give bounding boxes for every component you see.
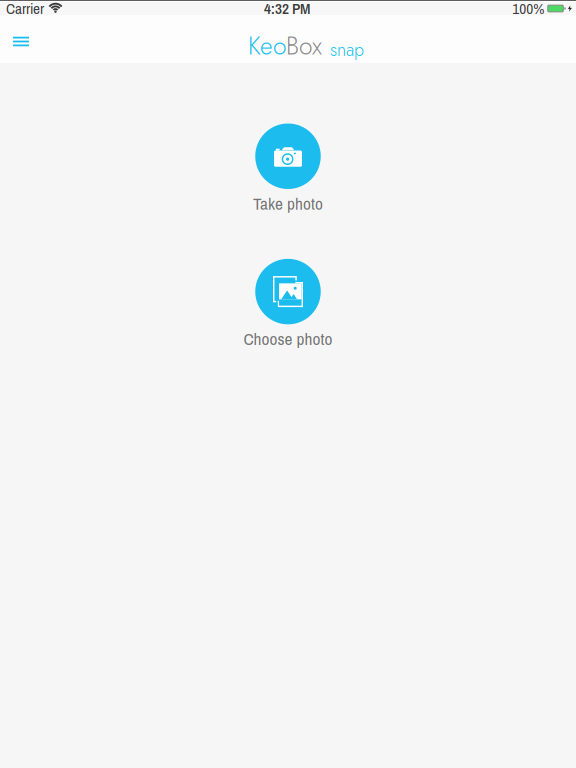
staticText: 4:32 PM: [264, 0, 310, 19]
staticText: snap: [330, 37, 364, 63]
staticText: Box: [286, 28, 322, 64]
staticText: Carrier: [6, 0, 44, 19]
staticText: Choose photo: [243, 327, 332, 350]
button[interactable]: Choose photo: [243, 259, 332, 350]
button[interactable]: Menu: [0, 16, 46, 62]
staticText: Take photo: [253, 192, 323, 215]
staticText: 100%: [512, 0, 544, 19]
button[interactable]: Take photo: [253, 123, 323, 215]
staticText: Keo: [248, 28, 286, 64]
